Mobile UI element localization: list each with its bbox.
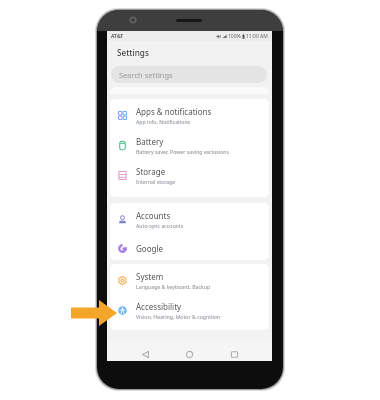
staticText: Vision, Hearing, Motor & cognition (136, 313, 221, 320)
staticText: System (136, 271, 164, 282)
staticText: Google (136, 243, 163, 254)
staticText: App info, Notifications (136, 118, 191, 125)
staticText: 11:00 AM (246, 33, 268, 40)
button[interactable]: System (110, 264, 269, 294)
staticText: Search settings (119, 70, 173, 80)
staticText: 100% (228, 33, 241, 40)
button[interactable]: Search settings (111, 66, 267, 83)
staticText: Settings (117, 47, 149, 58)
staticText: Auto-sync accounts (136, 222, 184, 229)
staticText: Accessibility (136, 301, 182, 312)
staticText: Accounts (136, 210, 171, 221)
button[interactable]: Battery (110, 129, 269, 159)
button[interactable]: Accounts (110, 203, 269, 233)
button[interactable]: Storage (110, 159, 269, 189)
staticText: Language & keyboard, Backup (136, 283, 211, 290)
staticText: AT&T (111, 33, 124, 40)
staticText: Internal storage (136, 178, 176, 185)
staticText: Apps & notifications (136, 106, 212, 117)
button[interactable]: Recent apps (228, 348, 241, 361)
button[interactable]: Apps & notifications (110, 99, 269, 129)
button[interactable]: Accessibility (110, 294, 269, 324)
button[interactable]: Back (139, 348, 152, 361)
button[interactable]: Google (110, 233, 269, 260)
staticText: Battery saver, Power saving exclusions (136, 148, 230, 155)
button[interactable]: Home (183, 348, 196, 361)
staticText: Battery (136, 136, 164, 147)
staticText: Storage (136, 166, 166, 177)
